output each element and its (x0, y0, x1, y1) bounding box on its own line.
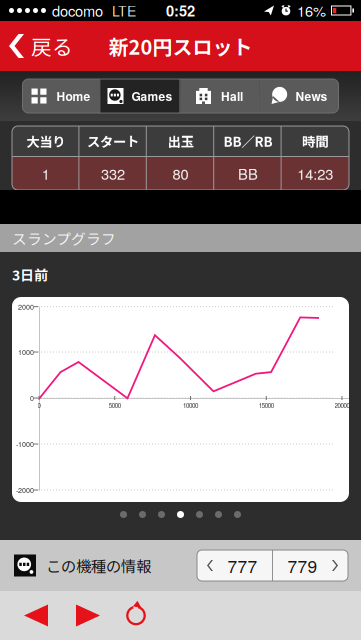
staticText: 戻る (31, 31, 73, 61)
staticText: Games (131, 87, 172, 105)
staticText: スタート (87, 131, 139, 151)
staticText: 大当り (26, 131, 65, 151)
button[interactable]: 戻る (0, 24, 73, 68)
staticText: スランプグラフ (12, 227, 116, 249)
staticText: 10000 (183, 401, 198, 410)
staticText: BB (238, 163, 258, 184)
staticText: 332 (101, 163, 125, 184)
staticText: -1000 (16, 439, 34, 449)
staticText: 新20円スロット (108, 31, 252, 60)
staticText: 15000 (259, 401, 274, 410)
staticText: Home (56, 87, 90, 105)
staticText: 80 (172, 163, 188, 184)
button[interactable]: Home (22, 79, 99, 113)
staticText: 時間 (302, 131, 328, 151)
staticText: 777 (227, 553, 257, 578)
button[interactable]: 777 (197, 550, 272, 581)
button[interactable]: Hall (180, 79, 258, 113)
button[interactable]: Games (100, 79, 179, 113)
staticText: 0:52 (166, 0, 195, 21)
staticText: LTE (112, 0, 136, 20)
button[interactable]: Forward (62, 592, 114, 638)
staticText: News (295, 87, 327, 105)
staticText: -2000 (16, 485, 34, 495)
staticText: 1 (42, 163, 50, 184)
button[interactable]: Back (10, 592, 62, 638)
staticText: BB／RB (223, 131, 272, 151)
staticText: 779 (287, 553, 317, 578)
button[interactable]: この機種の情報 (0, 543, 151, 588)
staticText: Hall (221, 87, 243, 105)
staticText: 1000 (18, 347, 34, 357)
staticText: この機種の情報 (46, 554, 151, 577)
staticText: 0 (30, 393, 34, 403)
staticText: 出玉 (167, 131, 193, 151)
button[interactable]: Reload (114, 592, 158, 638)
staticText: 20000 (334, 401, 349, 410)
staticText: 5000 (109, 401, 121, 410)
button[interactable]: News (259, 79, 338, 113)
staticText: docomo (52, 0, 103, 21)
button[interactable]: 779 (273, 550, 348, 581)
staticText: 3日前 (12, 264, 48, 285)
staticText: 14:23 (297, 163, 333, 184)
staticText: 0 (37, 401, 40, 410)
staticText: 2000 (18, 301, 34, 312)
staticText: 16% (297, 0, 326, 21)
